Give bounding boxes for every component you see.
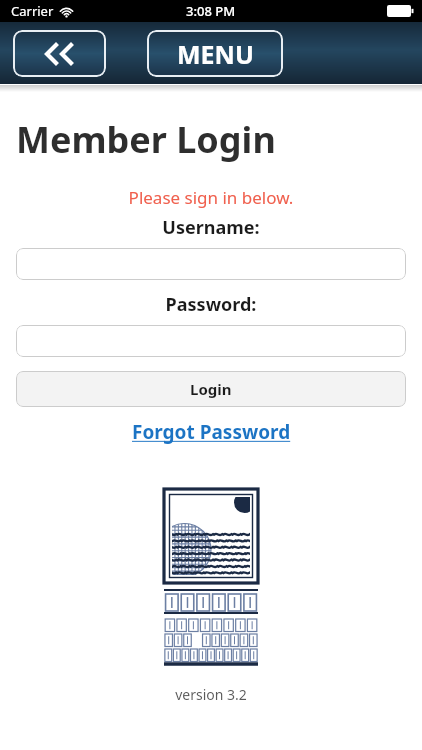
staticText: Username:: [0, 215, 422, 240]
staticText: Forgot Password: [132, 419, 291, 445]
staticText: Carrier: [11, 2, 54, 20]
staticText: Please sign in below.: [0, 186, 422, 209]
staticText: Password:: [0, 292, 422, 317]
button[interactable]: Back: [13, 30, 106, 77]
button[interactable]: [16, 325, 406, 357]
staticText: Login: [190, 379, 232, 399]
staticText: version 3.2: [0, 685, 422, 704]
staticText: 3:08 PM: [186, 2, 236, 20]
button[interactable]: [16, 248, 406, 280]
button[interactable]: MENU: [147, 30, 283, 77]
button[interactable]: Login: [16, 371, 406, 407]
staticText: MENU: [177, 37, 254, 71]
button[interactable]: Forgot Password: [126, 417, 297, 447]
staticText: Member Login: [16, 115, 276, 164]
